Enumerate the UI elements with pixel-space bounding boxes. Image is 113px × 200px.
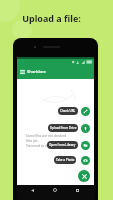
staticText: Upload from Drive [50, 126, 77, 130]
button[interactable]: Open from Library [47, 141, 78, 149]
staticText: Sharkbee [27, 69, 46, 75]
staticText: Take a Photo [56, 158, 75, 162]
button[interactable]: Recent apps [72, 185, 82, 195]
button[interactable]: Upload from Drive [48, 124, 78, 132]
staticText: Open from Library [49, 143, 76, 147]
staticText: Some files are not checked files yet. Yo… [26, 134, 68, 148]
button[interactable]: Close [78, 170, 90, 182]
button[interactable]: Back [27, 185, 37, 195]
button[interactable]: Check URL [58, 107, 78, 115]
button[interactable]: Open from Library [81, 141, 90, 150]
staticText: Check URL [60, 109, 76, 113]
button[interactable]: Check URL [81, 107, 90, 116]
button[interactable]: Home [50, 185, 60, 195]
button[interactable]: Take a Photo [81, 156, 90, 165]
button[interactable]: Navigation menu [18, 68, 26, 76]
staticText: Upload a file: [0, 12, 108, 24]
button[interactable]: Upload from Drive [81, 124, 90, 133]
button[interactable]: Take a Photo [54, 156, 76, 164]
